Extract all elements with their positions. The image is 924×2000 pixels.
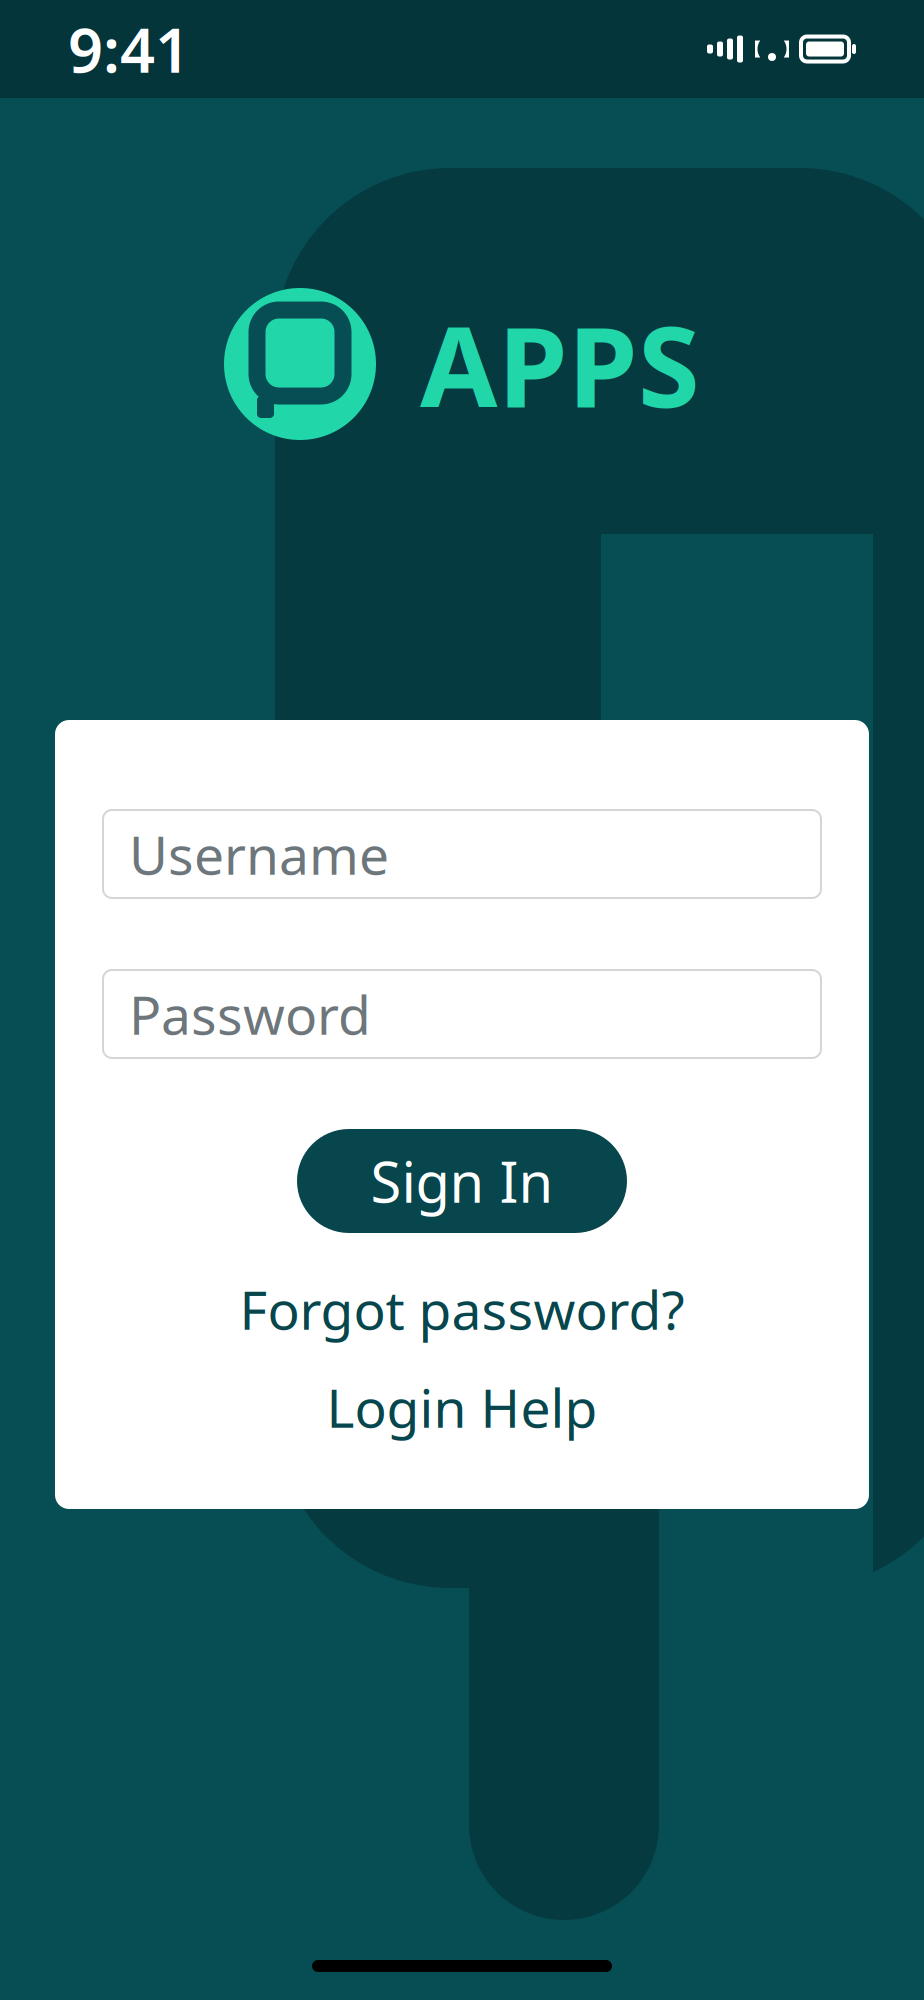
staticText: Sign In [370,1144,553,1218]
button[interactable]: Password [103,970,821,1058]
staticText: Login Help [326,1372,597,1442]
button[interactable]: Sign In [297,1129,627,1233]
staticText: Username [129,819,389,889]
staticText: Forgot password? [239,1274,684,1344]
staticText: Password [129,979,371,1049]
button[interactable]: Forgot password? [103,1283,821,1335]
staticText: 9:41 [68,8,190,90]
button[interactable]: Username [103,810,821,898]
button[interactable]: Login Help [103,1381,821,1433]
staticText: APPS [420,290,700,438]
